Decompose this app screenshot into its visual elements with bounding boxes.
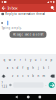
staticText: q [4, 58, 6, 62]
staticText: x [17, 74, 18, 78]
staticText: Typing a reply… [1, 26, 22, 30]
staticText: m [43, 74, 45, 78]
button[interactable]: Search [50, 4, 55, 12]
staticText: Message saved as a draft [12, 33, 43, 36]
staticText: i [40, 58, 41, 62]
staticText: . [46, 83, 47, 87]
staticText: o [45, 58, 47, 62]
staticText: z [12, 74, 13, 78]
staticText: e [14, 58, 16, 62]
staticText: k [43, 66, 44, 70]
staticText: p [50, 58, 52, 62]
staticText: a [7, 66, 8, 70]
staticText: l [48, 66, 49, 70]
staticText: b [32, 74, 34, 78]
button[interactable]: Back [15, 95, 18, 99]
button[interactable]: Send [49, 82, 55, 88]
staticText: y [30, 58, 31, 62]
staticText: g [27, 66, 29, 70]
staticText: u [35, 58, 37, 62]
staticText: Inbox [7, 5, 17, 11]
button[interactable]: Home [27, 96, 30, 98]
staticText: ?123 [1, 81, 7, 89]
staticText: s [12, 66, 13, 70]
staticText: w [9, 58, 11, 62]
staticText: f [22, 66, 23, 70]
staticText: r [20, 58, 21, 62]
staticText: t [25, 58, 26, 62]
staticText: d [17, 66, 19, 70]
staticText: h [32, 66, 34, 70]
staticText: j [38, 66, 39, 70]
staticText: Reply to conversation thread [5, 12, 45, 16]
staticText: n [37, 74, 39, 78]
staticText: c [22, 74, 23, 78]
button[interactable]: Back [1, 4, 6, 12]
